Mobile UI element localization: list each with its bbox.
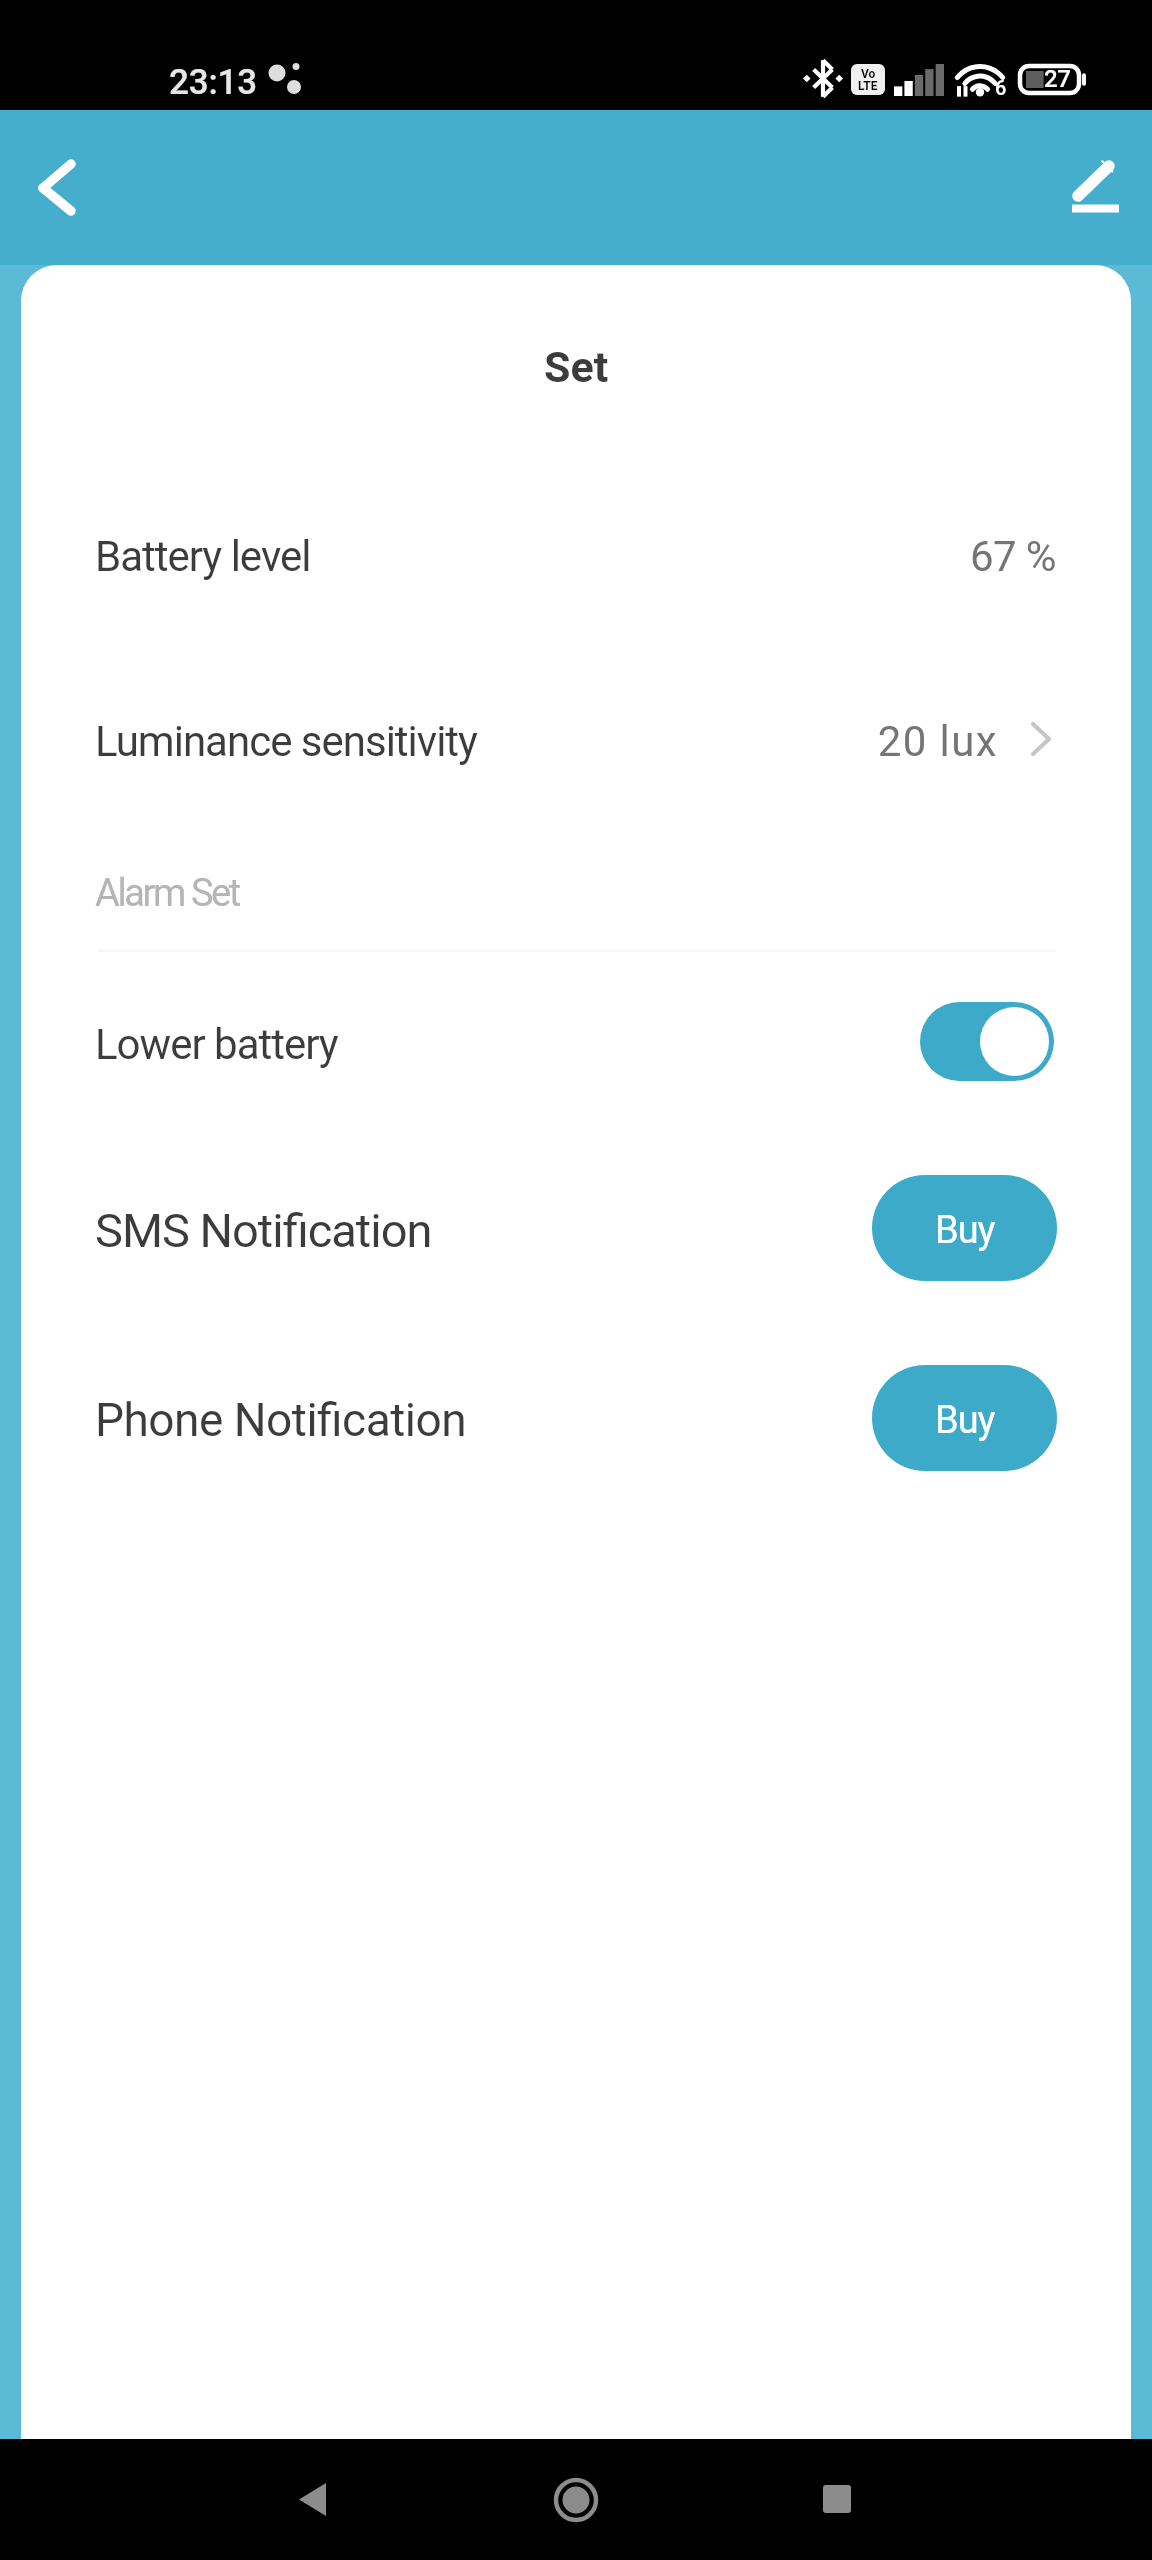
staticText: Phone Notification (95, 1393, 467, 1447)
staticText: Set (544, 342, 609, 392)
button[interactable]: Buy (872, 1365, 1057, 1471)
staticText: Buy (935, 1208, 995, 1253)
staticText: 67 % (970, 532, 1056, 581)
button[interactable]: Recents (801, 2463, 873, 2535)
staticText: 23:13 (169, 62, 257, 103)
staticText: 27 (1044, 65, 1071, 93)
button[interactable]: Back (18, 138, 98, 218)
staticText: SMS Notification (95, 1203, 432, 1258)
button[interactable]: Back (277, 2461, 349, 2533)
button[interactable]: Lower battery toggle (920, 1002, 1054, 1081)
button[interactable]: Home (540, 2464, 612, 2536)
staticText: LTE (858, 79, 878, 93)
staticText: Vo (861, 67, 876, 81)
staticText: 6 (995, 76, 1007, 99)
staticText: Lower battery (95, 1020, 338, 1069)
staticText: Alarm Set (95, 871, 239, 916)
staticText: Battery level (95, 532, 311, 581)
staticText: 20 lux (877, 717, 998, 766)
button[interactable]: Buy (872, 1175, 1057, 1281)
staticText: Buy (935, 1398, 995, 1443)
staticText: Luminance sensitivity (95, 717, 477, 766)
button[interactable]: Edit (1062, 155, 1128, 219)
